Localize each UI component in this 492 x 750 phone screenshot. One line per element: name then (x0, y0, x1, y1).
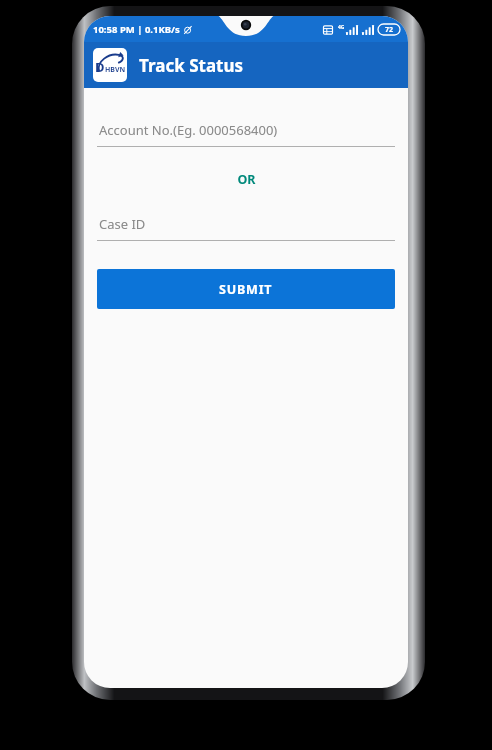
staticText: 10:58 PM | 0.1KB/s (93, 23, 180, 36)
staticText: SUBMIT (219, 281, 273, 298)
button[interactable]: Case ID (97, 213, 395, 241)
button[interactable]: SUBMIT (97, 269, 395, 309)
staticText: 4G (338, 24, 345, 31)
other: DHBVN logo (93, 48, 127, 82)
button[interactable]: Account No.(Eg. 0000568400) (97, 119, 395, 147)
staticText: Account No.(Eg. 0000568400) (99, 121, 278, 139)
staticText: D (95, 58, 105, 76)
staticText: 72 (385, 25, 394, 35)
staticText: HBVN (105, 65, 126, 75)
staticText: OR (237, 171, 256, 188)
staticText: Track Status (139, 54, 244, 77)
staticText: Case ID (99, 215, 146, 233)
